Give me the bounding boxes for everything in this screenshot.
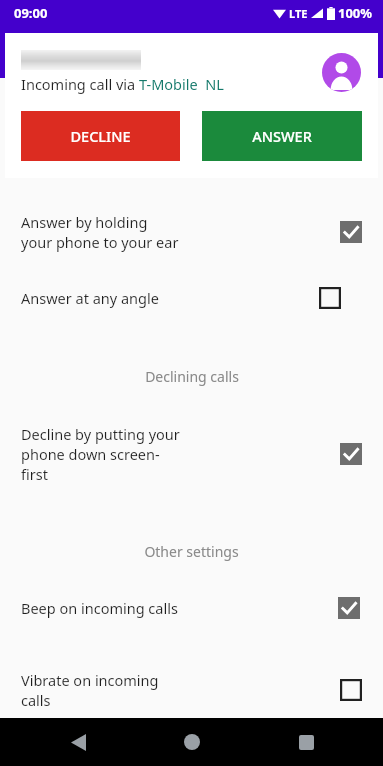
staticText: DECLINE — [70, 126, 131, 146]
button[interactable]: DECLINE — [21, 111, 180, 161]
button[interactable]: Beep on incoming calls — [0, 597, 383, 619]
button[interactable]: Vibrate on incoming calls — [0, 670, 383, 710]
staticText: Answer at any angle — [21, 288, 159, 308]
staticText: Declining calls — [145, 367, 239, 386]
staticText: Answer by holding your phone to your ear — [21, 212, 180, 252]
button[interactable]: Recent apps — [282, 718, 330, 766]
staticText: Incoming call via — [21, 74, 139, 94]
button[interactable]: Answer at any angle — [0, 287, 383, 309]
button[interactable]: Caller avatar — [322, 53, 361, 92]
staticText: 100% — [338, 4, 373, 22]
button[interactable]: Home — [168, 718, 216, 766]
staticText: Other settings — [144, 542, 239, 561]
button[interactable]: Answer by holding your phone to your ear — [0, 212, 383, 252]
staticText: Beep on incoming calls — [21, 598, 178, 618]
staticText: Decline by putting your phone down scree… — [21, 424, 180, 484]
button[interactable]: Decline by putting your phone down scree… — [0, 424, 383, 484]
button[interactable]: Back — [54, 718, 102, 766]
staticText: Vibrate on incoming calls — [21, 670, 180, 710]
staticText: ANSWER — [252, 126, 312, 146]
button[interactable]: T-Mobile NL — [139, 74, 224, 94]
staticText: LTE — [289, 6, 308, 21]
button[interactable]: ANSWER — [202, 111, 362, 161]
staticText: 09:00 — [14, 4, 48, 22]
